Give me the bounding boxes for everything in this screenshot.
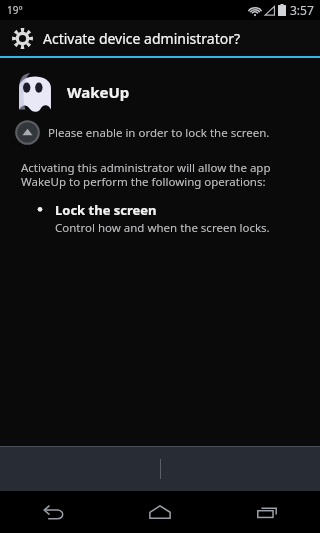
button[interactable]: Collapse details bbox=[0, 117, 320, 148]
staticText: 3:57 bbox=[290, 2, 314, 18]
staticText: Please enable in order to lock the scree… bbox=[48, 125, 270, 141]
staticText: 19° bbox=[7, 3, 23, 17]
button[interactable]: Back bbox=[0, 491, 106, 533]
button[interactable]: Home bbox=[106, 491, 213, 533]
staticText: Control how and when the screen locks. bbox=[55, 220, 270, 236]
staticText: WakeUp bbox=[67, 82, 130, 102]
staticText: Activate device administrator? bbox=[43, 29, 241, 48]
other: Collapse details bbox=[14, 119, 41, 146]
staticText: Lock the screen bbox=[55, 201, 157, 219]
button[interactable]: Recent apps bbox=[213, 491, 320, 533]
staticText: Activating this administrator will allow… bbox=[21, 160, 271, 189]
